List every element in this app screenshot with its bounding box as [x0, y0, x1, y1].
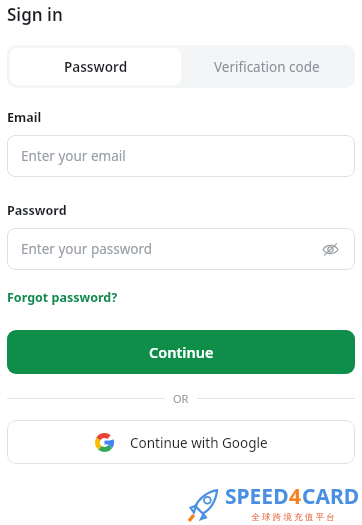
button[interactable]: Enter your email: [7, 135, 355, 177]
staticText: SPEED: [225, 482, 289, 511]
button[interactable]: Password: [10, 48, 181, 85]
button[interactable]: Enter your password: [7, 228, 355, 270]
button[interactable]: Continue with Google: [7, 420, 355, 464]
staticText: OR: [173, 391, 189, 406]
staticText: Sign in: [7, 3, 63, 26]
staticText: Password: [7, 202, 67, 219]
staticText: Continue: [149, 342, 214, 362]
staticText: CARD: [302, 482, 360, 511]
staticText: 4: [289, 482, 302, 511]
staticText: Forgot password?: [7, 289, 118, 306]
staticText: Enter your email: [21, 147, 126, 165]
button[interactable]: Show password: [319, 238, 341, 260]
button[interactable]: Continue: [7, 330, 355, 374]
staticText: Enter your password: [21, 240, 153, 258]
button[interactable]: Forgot password?: [7, 289, 118, 306]
staticText: Email: [7, 109, 42, 126]
staticText: Continue with Google: [130, 434, 268, 452]
staticText: 全 球 跨 境 充 值 平 台: [251, 511, 335, 523]
button[interactable]: Verification code: [181, 48, 352, 85]
staticText: Verification code: [214, 58, 320, 76]
staticText: Password: [64, 58, 128, 76]
